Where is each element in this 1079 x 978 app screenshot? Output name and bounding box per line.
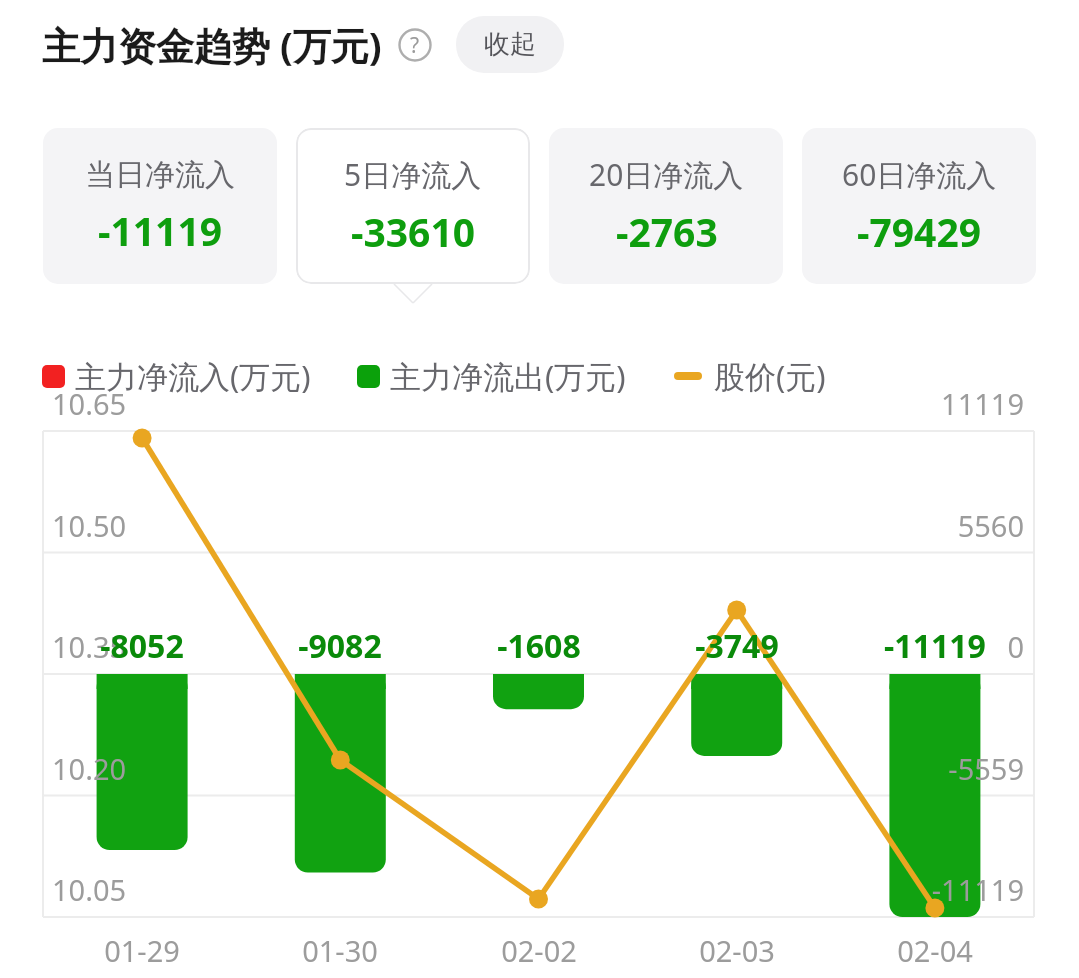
staticText: 10.05 xyxy=(52,870,127,909)
staticText: 股价(元) xyxy=(714,355,826,397)
staticText: -2763 xyxy=(616,205,718,258)
staticText: 10.65 xyxy=(52,384,127,423)
staticText: 5日净流入 xyxy=(344,154,482,195)
staticText: 5560 xyxy=(0,506,1024,545)
staticText: -79429 xyxy=(857,205,982,258)
staticText: 02-03 xyxy=(627,931,847,970)
staticText: -11119 xyxy=(0,870,1024,909)
staticText: 20日净流入 xyxy=(589,154,744,195)
staticText: 0 xyxy=(0,627,1024,666)
button[interactable]: 20日净流入 xyxy=(549,128,783,284)
staticText: 当日净流入 xyxy=(85,156,235,194)
staticText: -9082 xyxy=(230,624,450,668)
staticText: 11119 xyxy=(0,384,1024,423)
staticText: 主力净流出(万元) xyxy=(390,355,626,397)
staticText: 主力净流入(万元) xyxy=(75,355,311,397)
staticText: -33610 xyxy=(351,205,476,258)
staticText: 60日净流入 xyxy=(842,154,997,195)
staticText: 10.50 xyxy=(52,506,127,545)
button[interactable]: Help xyxy=(398,28,432,62)
staticText: -11119 xyxy=(98,204,223,257)
staticText: 主力资金趋势 (万元) xyxy=(42,19,382,71)
staticText: -11119 xyxy=(825,624,1045,668)
staticText: 10.20 xyxy=(52,749,127,788)
staticText: 01-29 xyxy=(32,931,252,970)
staticText: 02-04 xyxy=(825,931,1045,970)
staticText: -5559 xyxy=(0,749,1024,788)
staticText: ? xyxy=(410,31,420,60)
button[interactable]: 5日净流入 xyxy=(296,128,530,284)
staticText: 收起 xyxy=(484,28,536,61)
staticText: 02-02 xyxy=(429,931,649,970)
staticText: 10.35 xyxy=(52,627,127,666)
staticText: -1608 xyxy=(429,624,649,668)
staticText: 01-30 xyxy=(230,931,450,970)
staticText: -8052 xyxy=(32,624,252,668)
button[interactable]: 当日净流入 xyxy=(43,128,277,284)
staticText: -3749 xyxy=(627,624,847,668)
button[interactable]: 收起 xyxy=(456,16,564,73)
button[interactable]: 60日净流入 xyxy=(802,128,1036,284)
